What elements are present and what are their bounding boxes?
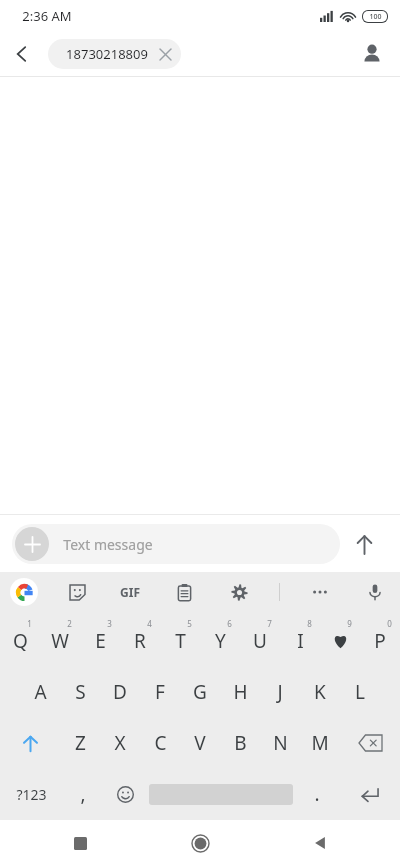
staticText: J — [277, 679, 283, 705]
button[interactable]: 7 — [240, 612, 280, 665]
button[interactable]: Home — [177, 820, 223, 866]
button[interactable]: D — [100, 665, 140, 718]
button[interactable]: 6 — [200, 612, 240, 665]
button[interactable]: Shift — [0, 718, 60, 768]
button[interactable]: G — [180, 665, 220, 718]
button[interactable]: 18730218809 — [48, 39, 181, 69]
button[interactable]: . — [296, 768, 338, 820]
staticText: Text message — [63, 535, 153, 554]
staticText: 6 — [227, 618, 232, 629]
button[interactable]: 4 — [120, 612, 160, 665]
staticText: 8 — [307, 618, 312, 629]
button[interactable]: N — [260, 718, 300, 768]
staticText: K — [314, 679, 326, 705]
staticText: 18730218809 — [66, 45, 148, 63]
button[interactable]: , — [62, 768, 104, 820]
staticText: V — [194, 730, 206, 756]
button[interactable]: S — [60, 665, 100, 718]
button[interactable]: M — [300, 718, 340, 768]
staticText: 4 — [147, 618, 152, 629]
staticText: W — [51, 628, 69, 654]
staticText: M — [311, 730, 329, 756]
staticText: E — [95, 628, 106, 654]
staticText: , — [80, 781, 86, 807]
staticText: GIF — [120, 584, 140, 600]
staticText: Z — [75, 730, 86, 756]
button[interactable]: J — [260, 665, 300, 718]
button[interactable]: C — [140, 718, 180, 768]
staticText: U — [253, 628, 267, 654]
button[interactable]: Space — [146, 768, 296, 820]
button[interactable]: B — [220, 718, 260, 768]
staticText: C — [154, 730, 167, 756]
staticText: 2 — [67, 618, 72, 629]
button[interactable]: Recents — [57, 820, 103, 866]
staticText: G — [193, 679, 207, 705]
button[interactable]: X — [100, 718, 140, 768]
button[interactable]: Clipboard — [169, 577, 199, 607]
staticText: N — [273, 730, 288, 756]
button[interactable]: Back — [297, 820, 343, 866]
button[interactable]: 2 — [40, 612, 80, 665]
button[interactable]: Backspace — [340, 718, 400, 768]
button[interactable]: L — [340, 665, 380, 718]
button[interactable]: Send — [340, 520, 388, 568]
staticText: 1 — [27, 618, 32, 629]
button[interactable]: A — [20, 665, 60, 718]
staticText: R — [134, 628, 146, 654]
button[interactable]: Add attachment — [12, 524, 340, 564]
button[interactable]: Voice input — [360, 577, 390, 607]
staticText: 0 — [387, 618, 392, 629]
staticText: T — [175, 628, 186, 654]
staticText: A — [34, 679, 47, 705]
other: Remove recipient — [160, 49, 171, 60]
button[interactable]: 9 — [320, 612, 360, 665]
staticText: . — [314, 781, 320, 807]
button[interactable]: Stickers — [62, 577, 92, 607]
staticText: 3 — [107, 618, 112, 629]
button[interactable]: Settings — [224, 577, 254, 607]
button[interactable]: 3 — [80, 612, 120, 665]
staticText: I — [297, 628, 304, 654]
staticText: P — [374, 628, 386, 654]
staticText: L — [355, 679, 365, 705]
button[interactable]: V — [180, 718, 220, 768]
staticText: X — [114, 730, 126, 756]
button[interactable]: More options — [305, 577, 335, 607]
staticText: B — [234, 730, 247, 756]
button[interactable]: 0 — [360, 612, 400, 665]
button[interactable]: ?123 — [0, 768, 62, 820]
staticText: 7 — [267, 618, 272, 629]
staticText: ?123 — [16, 785, 47, 804]
button[interactable]: 5 — [160, 612, 200, 665]
button[interactable]: F — [140, 665, 180, 718]
staticText: H — [233, 679, 248, 705]
button[interactable]: GIF — [116, 580, 144, 604]
button[interactable]: Emoji — [104, 768, 146, 820]
button[interactable]: Back — [0, 32, 44, 76]
staticText: D — [113, 679, 127, 705]
button[interactable]: 8 — [280, 612, 320, 665]
staticText: 5 — [187, 618, 192, 629]
button[interactable]: Google — [10, 578, 38, 606]
button[interactable]: Z — [60, 718, 100, 768]
button[interactable]: Add attachment — [15, 527, 49, 561]
button[interactable]: Contacts — [348, 32, 396, 76]
button[interactable]: 1 — [0, 612, 40, 665]
staticText: 2:36 AM — [22, 7, 72, 25]
button[interactable]: K — [300, 665, 340, 718]
staticText: Q — [13, 628, 28, 654]
button[interactable]: Enter — [338, 768, 400, 820]
staticText: S — [75, 679, 86, 705]
button[interactable]: H — [220, 665, 260, 718]
staticText: F — [155, 679, 165, 705]
staticText: 100 — [369, 12, 382, 22]
staticText: 9 — [347, 618, 352, 629]
staticText: Y — [215, 628, 226, 654]
